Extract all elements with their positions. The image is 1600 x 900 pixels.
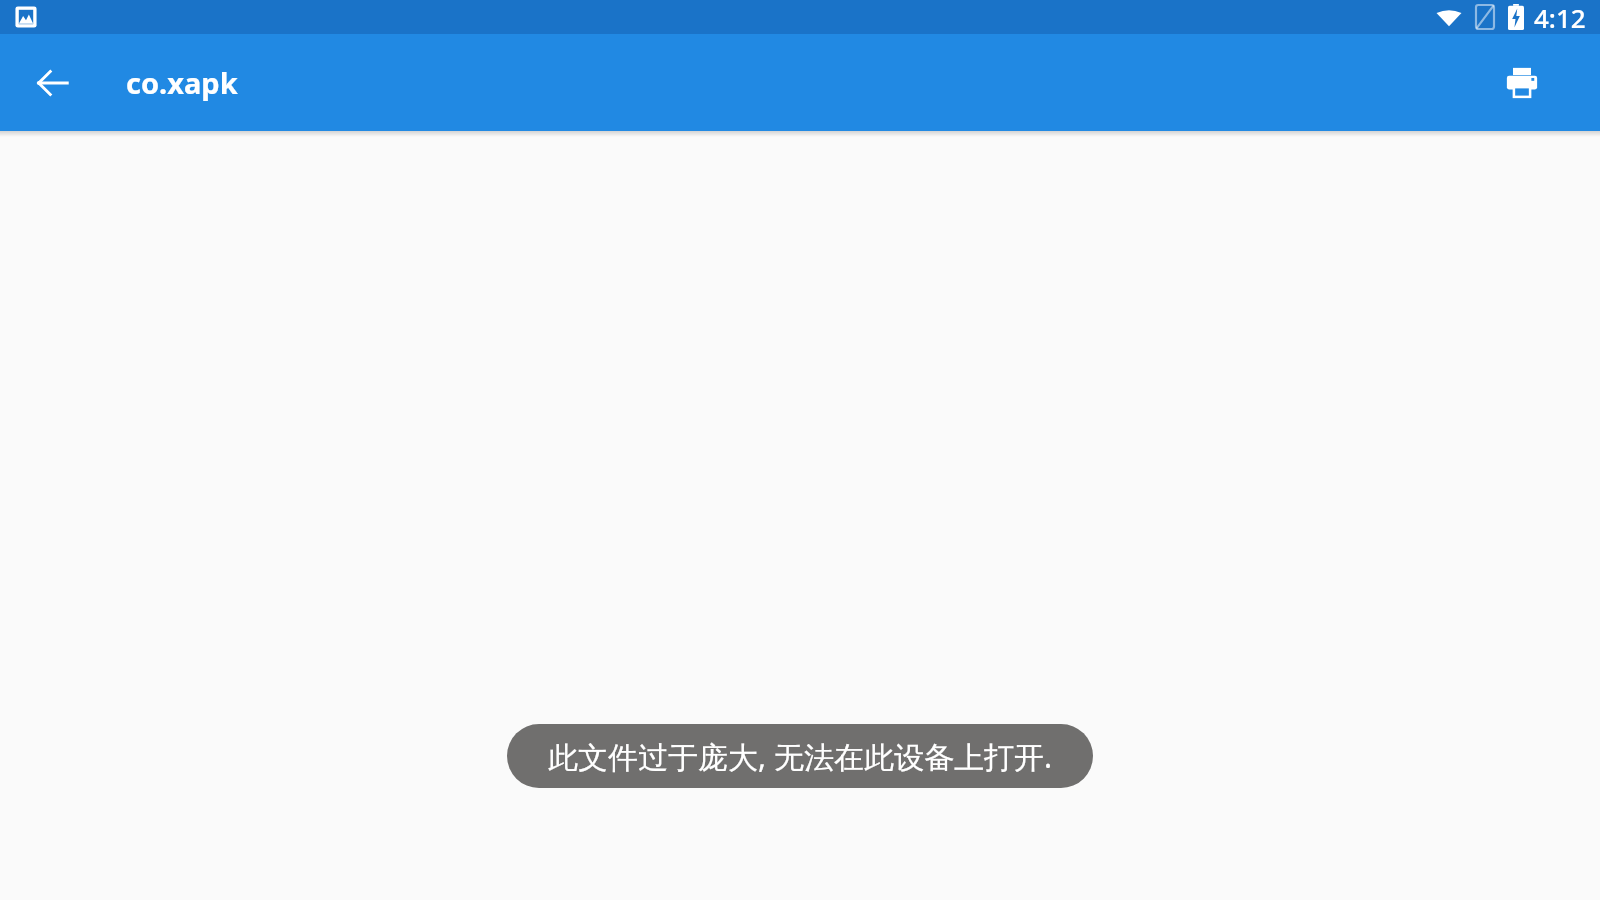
button[interactable]: Print bbox=[1486, 47, 1558, 119]
button[interactable]: Back bbox=[17, 47, 89, 119]
staticText: co.xapk bbox=[126, 63, 238, 102]
staticText: 此文件过于庞大, 无法在此设备上打开. bbox=[548, 736, 1052, 777]
staticText: 4:12 bbox=[1534, 0, 1586, 34]
button[interactable]: 此文件过于庞大, 无法在此设备上打开. bbox=[507, 724, 1093, 788]
